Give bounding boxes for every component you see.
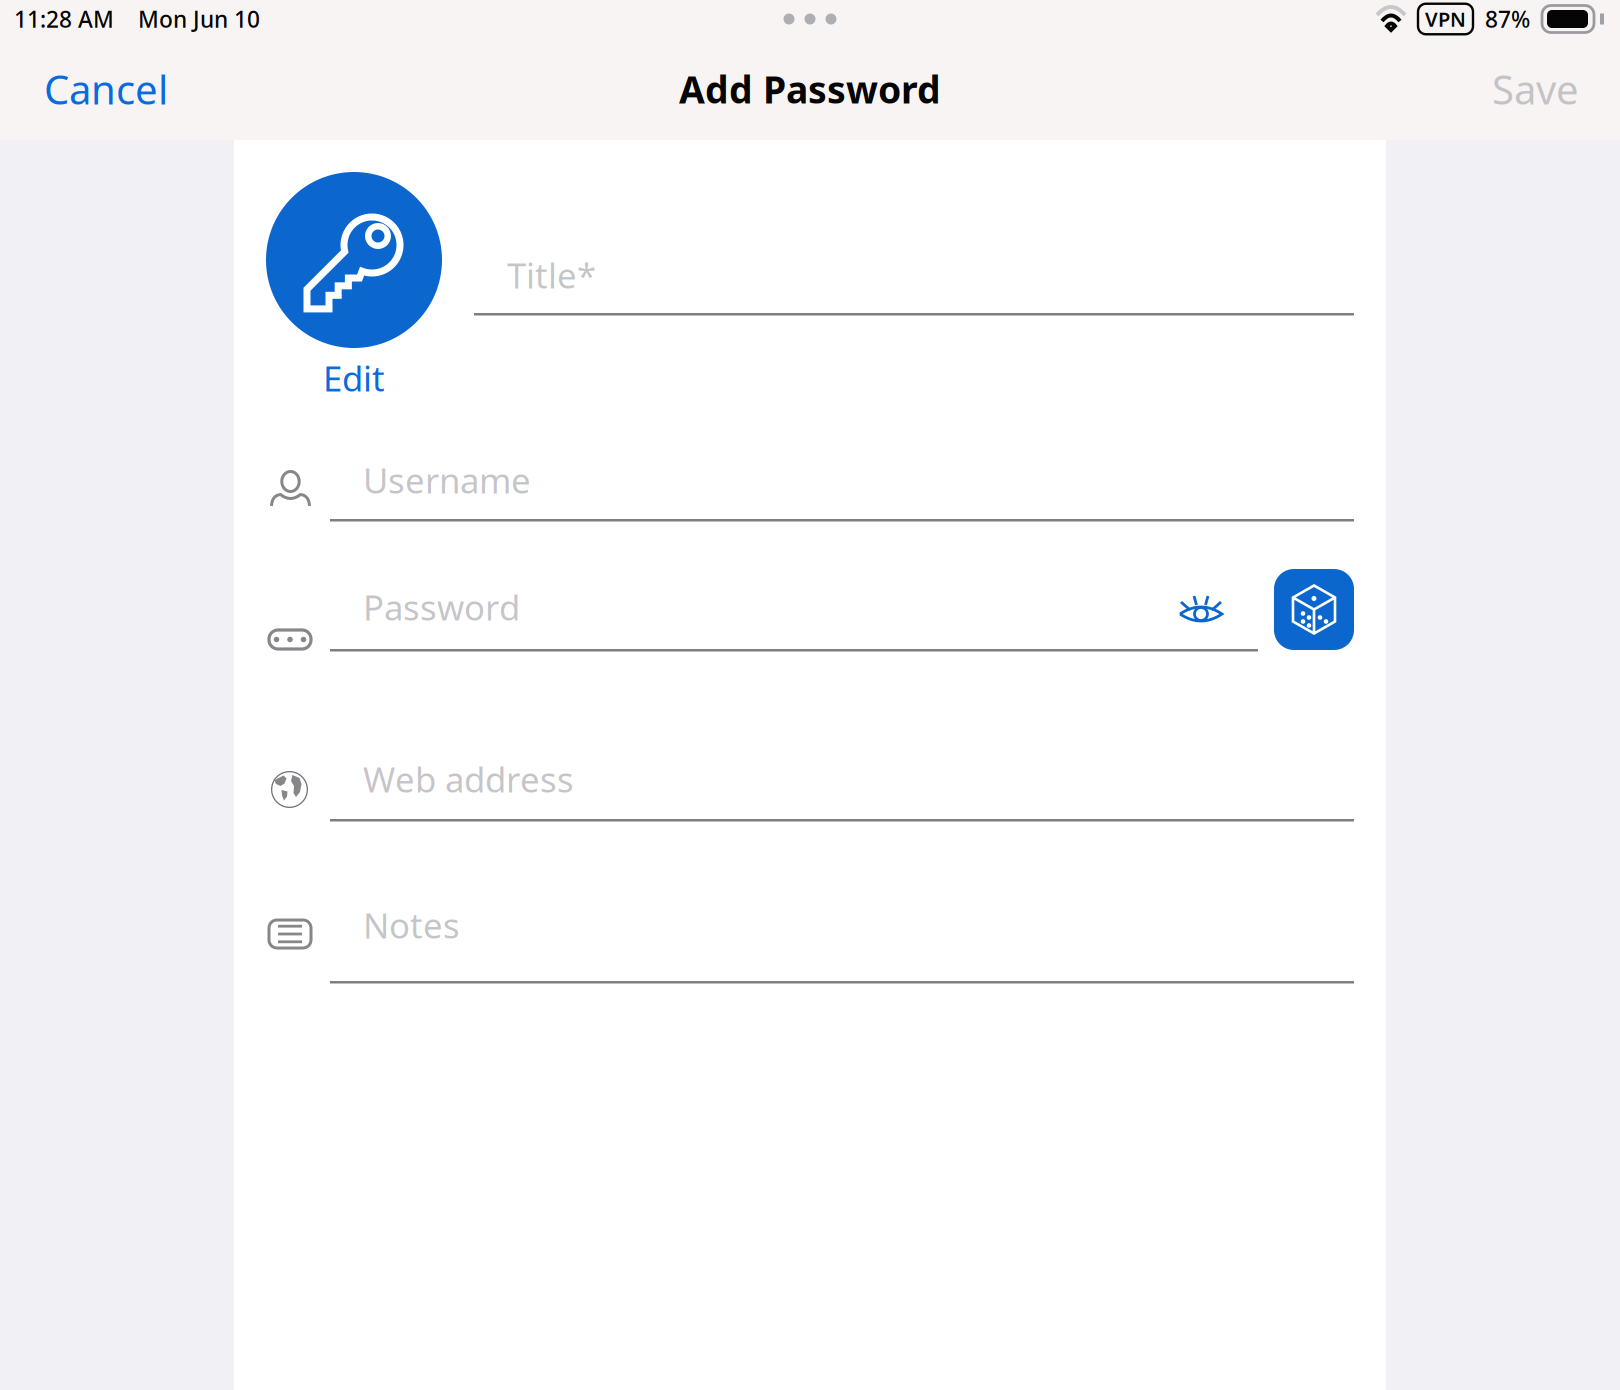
staticText: Username <box>363 457 531 503</box>
staticText: Edit <box>323 355 385 401</box>
staticText: Add Password <box>679 64 941 114</box>
staticText: Cancel <box>44 62 168 115</box>
staticText: Notes <box>363 902 460 948</box>
button[interactable]: Show password <box>1179 595 1223 623</box>
staticText: VPN <box>1425 6 1466 32</box>
button[interactable]: Generate password <box>1274 569 1354 650</box>
button[interactable]: Save <box>1492 62 1579 115</box>
staticText: 87% <box>1485 4 1530 34</box>
staticText: Web address <box>363 756 574 802</box>
staticText: Save <box>1492 62 1579 115</box>
staticText: 11:28 AM <box>14 4 114 34</box>
button[interactable]: Edit <box>266 172 442 401</box>
staticText: Password <box>363 584 520 630</box>
staticText: Title* <box>507 252 596 298</box>
button[interactable]: Cancel <box>44 62 168 115</box>
staticText: Mon Jun 10 <box>138 4 260 34</box>
